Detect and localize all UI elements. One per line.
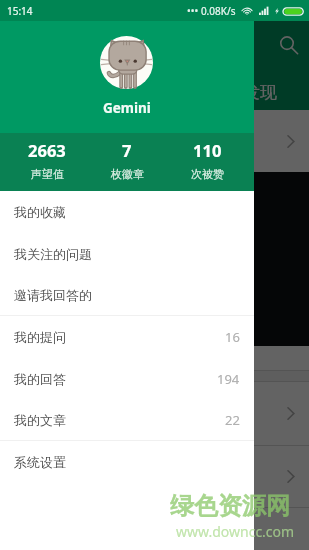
staticText: 110 [193, 139, 222, 161]
staticText: 我关注的问题 [14, 246, 92, 262]
button[interactable]: 我的提问 [0, 316, 254, 358]
button[interactable]: 110 [167, 133, 247, 191]
button[interactable]: 2663 [7, 133, 87, 191]
staticText: 2663 [28, 139, 66, 161]
staticText: Gemini [103, 99, 151, 117]
staticText: 发现 [243, 82, 277, 103]
staticText: ••• 0.08K/s [187, 4, 236, 18]
button[interactable]: 我的回答 [0, 358, 254, 399]
staticText: 声望值 [31, 167, 64, 181]
staticText: 7 [122, 139, 132, 161]
button[interactable]: 系统设置 [0, 441, 254, 483]
button[interactable]: 我的收藏 [0, 191, 254, 233]
staticText: 我的回答 [14, 371, 66, 387]
button[interactable]: Search [273, 28, 301, 56]
button[interactable]: 我的文章 [0, 399, 254, 440]
staticText: 绿色资源网 [170, 491, 290, 521]
staticText: 15:14 [7, 4, 33, 18]
staticText: 次被赞 [191, 167, 224, 181]
staticText: 我的提问 [14, 329, 66, 345]
staticText: 系统设置 [14, 454, 66, 470]
staticText: 邀请我回答的 [14, 287, 92, 303]
staticText: 我的文章 [14, 412, 66, 428]
button[interactable]: 7 [87, 133, 167, 191]
button[interactable]: 我关注的问题 [0, 233, 254, 274]
staticText: 枚徽章 [111, 167, 144, 181]
staticText: 22 [225, 411, 240, 429]
staticText: 16 [225, 328, 240, 346]
button[interactable]: 邀请我回答的 [0, 274, 254, 315]
staticText: 我的收藏 [14, 204, 66, 220]
staticText: www.downcc.com [176, 522, 295, 541]
staticText: 194 [217, 370, 240, 388]
